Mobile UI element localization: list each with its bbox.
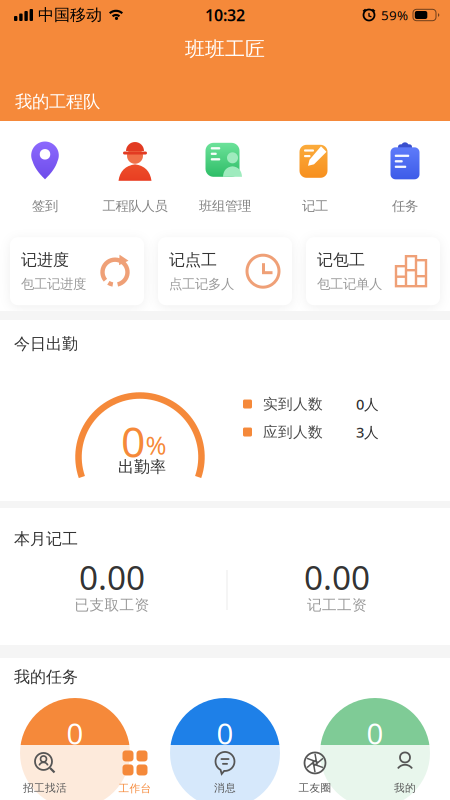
staticText: 班组管理 <box>199 198 251 214</box>
staticText: 记进度 <box>21 250 69 270</box>
staticText: 签到 <box>32 198 58 214</box>
staticText: 10:32 <box>205 4 245 26</box>
button[interactable]: 记工 <box>270 138 360 214</box>
staticText: 3人 <box>356 422 379 442</box>
staticText: 我的工程队 <box>15 91 100 112</box>
staticText: 0.00 <box>304 555 370 599</box>
staticText: 我的 <box>394 781 416 794</box>
button[interactable]: 记进度 <box>10 237 144 305</box>
staticText: 包工记单人 <box>317 276 382 292</box>
staticText: 包工记进度 <box>21 276 86 292</box>
staticText: 任务 <box>392 198 418 214</box>
staticText: 消息 <box>214 781 236 794</box>
staticText: 记工 <box>302 198 328 214</box>
staticText: 0 <box>216 713 233 752</box>
staticText: 59% <box>381 6 408 24</box>
staticText: 0 <box>366 713 383 752</box>
staticText: 已支取工资 <box>74 596 149 614</box>
staticText: 工程队人员 <box>102 198 167 214</box>
button[interactable]: 班组管理 <box>180 138 270 214</box>
button[interactable]: 消息 <box>180 745 270 800</box>
staticText: 实到人数 <box>263 395 323 413</box>
staticText: 0.00 <box>79 555 145 599</box>
staticText: 0 <box>66 713 83 752</box>
staticText: 记点工 <box>169 250 217 270</box>
staticText: 工作台 <box>118 782 151 795</box>
button[interactable]: 工友圈 <box>270 745 360 800</box>
button[interactable]: 工程队人员 <box>90 138 180 214</box>
staticText: 班班工匠 <box>185 37 265 61</box>
staticText: 工友圈 <box>298 781 331 794</box>
staticText: 0 <box>121 413 145 469</box>
button[interactable]: 招工找活 <box>0 745 90 800</box>
staticText: 0人 <box>356 394 379 414</box>
staticText: 今日出勤 <box>14 334 78 354</box>
staticText: 记包工 <box>317 250 365 270</box>
staticText: 中国移动 <box>38 5 102 25</box>
button[interactable]: 签到 <box>0 138 90 214</box>
staticText: 记工工资 <box>307 596 367 614</box>
button[interactable]: 记点工 <box>158 237 292 305</box>
staticText: 本月记工 <box>14 529 78 549</box>
button[interactable]: 记包工 <box>306 237 440 305</box>
button[interactable]: 工作台 <box>90 745 180 800</box>
staticText: 招工找活 <box>23 781 67 794</box>
button[interactable]: 任务 <box>360 138 450 214</box>
staticText: % <box>145 428 166 462</box>
staticText: 点工记多人 <box>169 276 234 292</box>
staticText: 应到人数 <box>263 423 323 441</box>
staticText: 出勤率 <box>118 457 166 477</box>
staticText: 我的任务 <box>14 667 78 687</box>
button[interactable]: 我的 <box>360 745 450 800</box>
